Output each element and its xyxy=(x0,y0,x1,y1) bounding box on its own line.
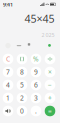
staticText: 2 025 xyxy=(41,31,54,39)
staticText: 2 xyxy=(20,94,24,102)
staticText: 45×45 xyxy=(24,11,54,26)
staticText: + xyxy=(48,94,52,102)
button[interactable]: Mode xyxy=(28,43,30,46)
button[interactable]: Divide xyxy=(45,54,55,64)
button[interactable]: 8 xyxy=(17,67,27,77)
button[interactable]: Sound xyxy=(3,106,13,116)
button[interactable]: Parentheses xyxy=(17,54,27,64)
button[interactable]: + xyxy=(45,93,55,103)
button[interactable]: 2 xyxy=(17,93,27,103)
staticText: 9 xyxy=(34,68,38,76)
staticText: 3 xyxy=(34,94,38,102)
staticText: − xyxy=(48,81,52,89)
button[interactable]: − xyxy=(45,80,55,90)
staticText: C xyxy=(6,55,10,63)
button[interactable]: 3 xyxy=(31,93,41,103)
staticText: 9:41 xyxy=(3,1,13,8)
staticText: 4 xyxy=(6,81,10,89)
button[interactable]: % xyxy=(31,54,41,64)
button[interactable]: . xyxy=(31,106,41,116)
button[interactable]: History xyxy=(48,44,51,47)
button[interactable]: 0 xyxy=(17,106,27,116)
button[interactable]: 5 xyxy=(17,80,27,90)
staticText: 8 xyxy=(20,68,24,76)
button[interactable]: Equals xyxy=(45,106,55,116)
staticText: × xyxy=(48,68,52,76)
staticText: 7 xyxy=(6,68,10,76)
button[interactable]: 1 xyxy=(3,93,13,103)
button[interactable]: Keypad style xyxy=(5,43,11,48)
button[interactable]: × xyxy=(45,67,55,77)
button[interactable]: 6 xyxy=(31,80,41,90)
staticText: 0 xyxy=(20,107,24,115)
staticText: 6 xyxy=(34,81,38,89)
staticText: . xyxy=(35,107,37,115)
staticText: % xyxy=(33,55,39,63)
staticText: 5 xyxy=(20,81,24,89)
staticText: 1 xyxy=(6,94,10,102)
button[interactable]: 4 xyxy=(3,80,13,90)
button[interactable]: C xyxy=(3,54,13,64)
button[interactable]: 9 xyxy=(31,67,41,77)
staticText: = xyxy=(48,107,52,115)
button[interactable]: 7 xyxy=(3,67,13,77)
